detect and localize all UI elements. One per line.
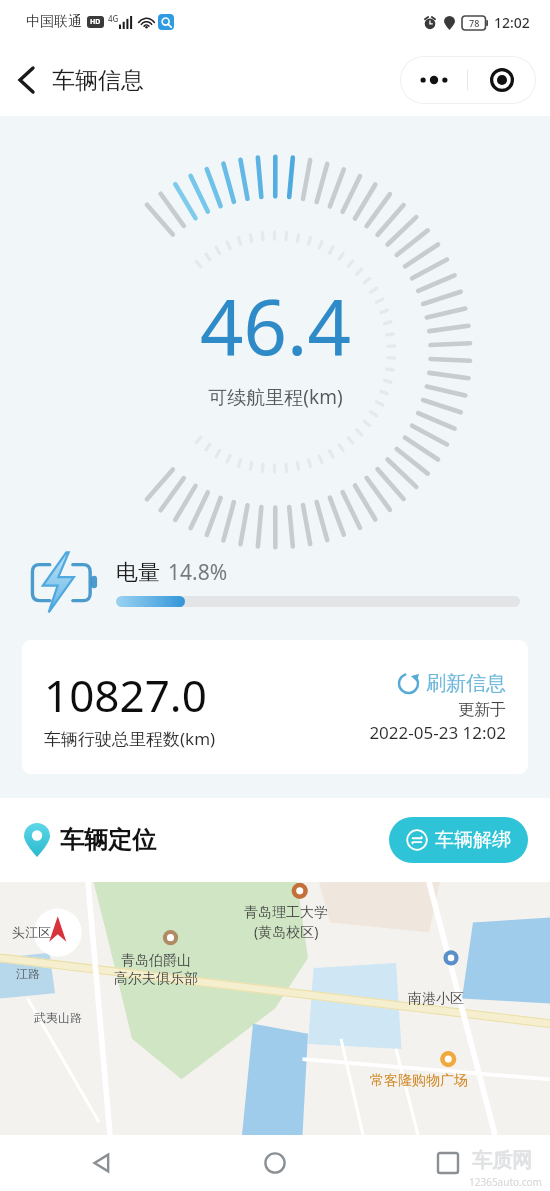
staticText: 12:02 [494,13,530,32]
button[interactable]: 车辆解绑 [389,817,528,863]
staticText: 12365auto.com [469,1175,542,1189]
staticText: 车辆信息 [52,66,144,95]
staticText: 电量 [116,559,160,587]
staticText: 中国联通 [26,13,82,31]
staticText: 78 [469,17,480,29]
staticText: 高尔夫俱乐部 [114,970,198,988]
staticText: 青岛理工大学 [244,904,328,922]
staticText: 可续航里程(km) [208,384,343,410]
staticText: 10827.0 [44,665,207,725]
button[interactable]: Back [0,54,52,106]
button[interactable]: 刷新信息 [397,671,506,696]
button[interactable]: More [400,56,467,104]
staticText: 青岛伯爵山 [121,952,191,970]
staticText: 14.8% [168,558,228,587]
staticText: HD [90,17,101,27]
button[interactable]: Back [78,1139,126,1187]
staticText: 头江区 [12,924,51,940]
staticText: 南港小区 [408,990,464,1008]
staticText: 车辆解绑 [435,828,511,852]
staticText: 更新于 [458,700,506,720]
staticText: 车辆行驶总里程数(km) [44,727,216,750]
button[interactable]: Recents [424,1139,472,1187]
staticText: 4G [108,13,119,24]
button[interactable]: Close [468,56,536,104]
staticText: 车质网 [472,1148,532,1173]
button[interactable]: 10827.0 [22,640,528,774]
button[interactable]: Home [251,1139,299,1187]
staticText: 46.4 [200,274,351,378]
staticText: 武夷山路 [34,1010,82,1025]
staticText: 刷新信息 [426,671,506,696]
staticText: 常客隆购物广场 [370,1072,468,1090]
staticText: (黄岛校区) [254,922,319,941]
staticText: 2022-05-23 12:02 [369,721,506,744]
button[interactable]: Map [0,882,550,1135]
staticText: 江路 [16,966,40,981]
staticText: 车辆定位 [60,825,156,855]
